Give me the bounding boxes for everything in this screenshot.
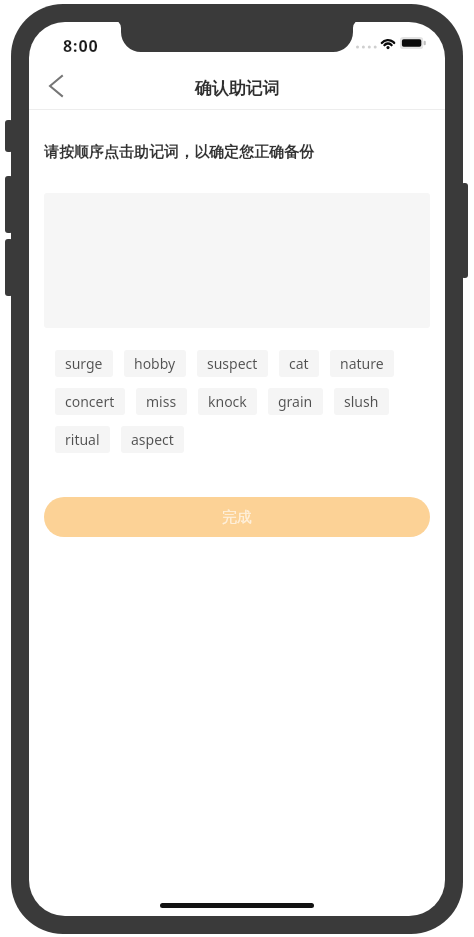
- staticText: ritual: [65, 430, 100, 449]
- button[interactable]: ritual: [55, 426, 110, 453]
- button[interactable]: knock: [198, 388, 257, 415]
- staticText: nature: [340, 354, 384, 373]
- button[interactable]: grain: [268, 388, 323, 415]
- staticText: suspect: [207, 354, 258, 373]
- button[interactable]: Back: [32, 64, 80, 108]
- button[interactable]: 完成: [44, 497, 430, 537]
- staticText: 确认助记词: [29, 78, 445, 99]
- staticText: grain: [278, 392, 313, 411]
- staticText: slush: [344, 392, 379, 411]
- button[interactable]: miss: [136, 388, 187, 415]
- button[interactable]: suspect: [197, 350, 268, 377]
- staticText: miss: [146, 392, 177, 411]
- staticText: surge: [65, 354, 103, 373]
- button[interactable]: cat: [279, 350, 319, 377]
- staticText: hobby: [134, 354, 176, 373]
- button[interactable]: aspect: [121, 426, 184, 453]
- staticText: 完成: [222, 508, 252, 527]
- button[interactable]: slush: [334, 388, 389, 415]
- button[interactable]: hobby: [124, 350, 186, 377]
- staticText: cat: [289, 354, 309, 373]
- button[interactable]: surge: [55, 350, 113, 377]
- button[interactable]: concert: [55, 388, 125, 415]
- staticText: aspect: [131, 430, 174, 449]
- button[interactable]: nature: [330, 350, 394, 377]
- staticText: 8:00: [63, 35, 99, 57]
- staticText: knock: [208, 392, 247, 411]
- staticText: 请按顺序点击助记词，以确定您正确备份: [44, 143, 314, 162]
- staticText: concert: [65, 392, 115, 411]
